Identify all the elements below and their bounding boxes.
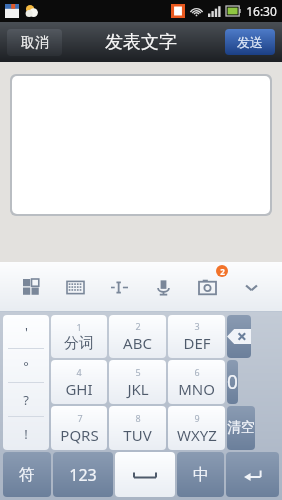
button[interactable]: 5 (109, 360, 166, 404)
staticText: 5 (135, 366, 141, 378)
staticText: 符 (19, 465, 35, 485)
button[interactable]: 清空 (227, 406, 255, 450)
staticText: 发表文字 (105, 31, 177, 54)
button[interactable]: 0 (227, 360, 238, 404)
button[interactable]: Camera (190, 270, 224, 304)
staticText: 6 (194, 366, 200, 378)
staticText: 发送 (237, 34, 263, 50)
staticText: PQRS (60, 425, 99, 445)
button[interactable]: 7 (51, 406, 107, 450)
staticText: 2 (135, 320, 141, 332)
staticText: 9 (194, 412, 200, 424)
button[interactable]: 1 (51, 315, 107, 358)
staticText: ! (24, 425, 28, 443)
staticText: ' (25, 323, 28, 341)
staticText: 取消 (21, 34, 49, 52)
button[interactable]: 9 (168, 406, 225, 450)
staticText: ° (23, 357, 29, 375)
staticText: 4 (76, 366, 82, 378)
button[interactable]: Keyboard (58, 270, 92, 304)
staticText: 3 (194, 320, 200, 332)
staticText: 清空 (227, 419, 255, 437)
staticText: WXYZ (177, 425, 217, 445)
staticText: DEF (183, 333, 211, 353)
button[interactable]: Enter (226, 452, 279, 497)
button[interactable]: 符 (3, 452, 51, 497)
button[interactable]: 中 (177, 452, 224, 497)
staticText: 7 (77, 412, 83, 424)
button[interactable]: Punctuation (3, 315, 49, 450)
staticText: ? (23, 391, 29, 409)
staticText: TUV (123, 425, 152, 445)
button[interactable]: Cursor (102, 270, 136, 304)
staticText: 分词 (64, 334, 94, 353)
button[interactable]: Voice input (146, 270, 180, 304)
staticText: 中 (193, 465, 209, 485)
staticText: 1 (76, 321, 82, 333)
staticText: GHI (65, 379, 93, 399)
button[interactable]: 2 (109, 315, 166, 358)
button[interactable]: Backspace (227, 315, 251, 358)
button[interactable]: Apps (14, 270, 48, 304)
staticText: 2 (220, 266, 225, 277)
staticText: JKL (127, 379, 149, 399)
button[interactable]: 3 (168, 315, 225, 358)
staticText: 0 (227, 369, 238, 395)
button[interactable]: 6 (168, 360, 225, 404)
button[interactable]: 发送 (225, 29, 275, 55)
staticText: 8 (135, 412, 141, 424)
staticText: MNO (178, 379, 215, 399)
button[interactable]: 4 (51, 360, 107, 404)
button[interactable]: 123 (53, 452, 113, 497)
staticText: 16:30 (246, 3, 277, 19)
staticText: ABC (123, 333, 152, 353)
button[interactable]: 8 (109, 406, 166, 450)
staticText: 123 (69, 464, 97, 486)
button[interactable]: 取消 (7, 29, 62, 56)
button[interactable]: Space (115, 452, 175, 497)
button[interactable]: Collapse keyboard (234, 270, 268, 304)
